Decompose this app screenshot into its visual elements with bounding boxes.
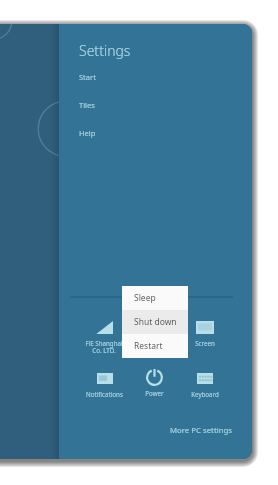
staticText: Power	[145, 389, 164, 397]
button[interactable]: Restart	[122, 334, 188, 358]
staticText: Restart	[134, 340, 163, 352]
button[interactable]: Power	[129, 369, 179, 405]
button[interactable]: More PC settings	[168, 423, 235, 438]
other: Screen brightness	[196, 321, 214, 334]
other: Network	[96, 321, 113, 334]
button[interactable]: Keyboard	[180, 370, 230, 406]
staticText: Help	[79, 128, 96, 138]
staticText: Shut down	[134, 316, 177, 328]
button[interactable]: Tiles	[79, 94, 157, 116]
staticText: Start	[79, 72, 96, 82]
other: Power	[146, 369, 163, 386]
staticText: Keyboard	[191, 390, 219, 398]
staticText: Settings	[79, 41, 131, 60]
button[interactable]: Start	[79, 66, 157, 88]
other: Keyboard	[197, 373, 213, 384]
staticText: Sleep	[134, 292, 156, 304]
staticText: FiE Shanghai Co. LTD.	[85, 339, 123, 355]
staticText: Screen	[195, 339, 215, 347]
staticText: More PC settings	[170, 425, 233, 436]
button[interactable]: Shut down	[122, 310, 188, 334]
button[interactable]: Screen brightness	[180, 319, 230, 355]
staticText: Tiles	[79, 100, 95, 110]
button[interactable]: Notifications	[79, 370, 129, 406]
other: Notifications	[97, 373, 113, 384]
button[interactable]: Sleep	[122, 286, 188, 310]
staticText: Notifications	[86, 390, 123, 398]
button[interactable]: Help	[79, 122, 157, 144]
button[interactable]: Network	[79, 319, 129, 355]
